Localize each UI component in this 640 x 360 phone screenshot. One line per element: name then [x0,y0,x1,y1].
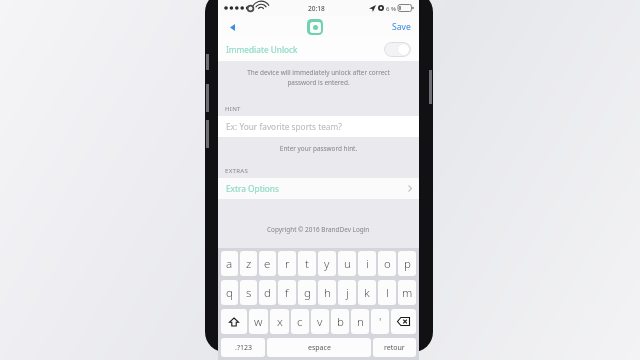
staticText: a [226,256,233,272]
button[interactable]: d [259,280,276,305]
button[interactable]: Backspace [391,309,416,334]
staticText: HINT [225,104,241,112]
button[interactable]: p [398,251,416,276]
button[interactable]: v [311,309,329,334]
button[interactable]: q [221,280,238,305]
staticText: b [337,314,344,330]
button[interactable]: retour [373,338,416,357]
staticText: retour [384,343,405,353]
staticText: The device will immediately unlock after… [228,68,409,86]
button[interactable]: h [318,280,336,305]
button[interactable]: k [358,280,376,305]
staticText: Ex: Your favorite sports team? [226,121,342,132]
staticText: EXTRAS [225,166,249,174]
button[interactable]: Shift [221,309,247,334]
button[interactable]: Back [224,18,240,36]
staticText: e [264,256,271,272]
staticText: t [305,256,309,272]
staticText: Copyright © 2016 BrandDev Login [267,225,370,234]
staticText: u [344,256,351,272]
button[interactable]: Immediate Unlock toggle [384,42,411,57]
button[interactable]: u [338,251,356,276]
button[interactable]: w [249,309,268,334]
staticText: c [297,314,303,330]
button[interactable]: Extra Options [218,178,419,199]
staticText: y [324,256,330,272]
button[interactable]: z [240,251,257,276]
button[interactable]: espace [267,338,371,357]
button[interactable]: x [270,309,289,334]
staticText: i [366,256,369,272]
staticText: f [285,285,289,301]
staticText: v [317,314,323,330]
button[interactable]: Immediate Unlock [218,38,419,61]
staticText: Extra Options [226,183,279,194]
staticText: r [285,256,290,272]
staticText: g [304,285,311,301]
button[interactable]: m [398,280,416,305]
staticText: 6 % [386,4,397,12]
button[interactable]: Ex: Your favorite sports team? [218,116,419,137]
button[interactable]: o [378,251,396,276]
staticText: d [264,285,271,301]
staticText: Save [392,21,411,33]
button[interactable]: r [278,251,296,276]
staticText: p [404,256,411,272]
button[interactable]: y [318,251,336,276]
staticText: m [402,285,413,301]
staticText: s [246,285,252,301]
staticText: l [386,285,389,301]
staticText: k [364,285,370,301]
staticText: .?123 [235,343,252,353]
button[interactable]: f [278,280,296,305]
staticText: q [226,285,233,301]
button[interactable]: j [338,280,356,305]
button[interactable]: a [221,251,238,276]
button[interactable]: App logo [307,19,323,35]
staticText: espace [308,343,331,353]
button[interactable]: Save [390,18,413,36]
button[interactable]: n [351,309,369,334]
button[interactable]: ' [371,309,389,334]
staticText: z [246,256,252,272]
other: Backspace [397,317,410,326]
other: Shift [229,317,239,327]
button[interactable]: c [291,309,309,334]
staticText: n [357,314,364,330]
staticText: ' [379,314,382,330]
button[interactable]: e [259,251,276,276]
staticText: Immediate Unlock [226,44,298,55]
button[interactable]: l [378,280,396,305]
staticText: o [384,256,391,272]
button[interactable]: i [358,251,376,276]
staticText: h [324,285,331,301]
staticText: w [254,314,263,330]
button[interactable]: g [298,280,316,305]
staticText: 20:18 [308,4,325,13]
button[interactable]: t [298,251,316,276]
button[interactable]: .?123 [221,338,265,357]
staticText: Enter your password hint. [228,144,409,153]
staticText: j [346,285,349,301]
button[interactable]: s [240,280,257,305]
staticText: x [277,314,283,330]
button[interactable]: b [331,309,349,334]
